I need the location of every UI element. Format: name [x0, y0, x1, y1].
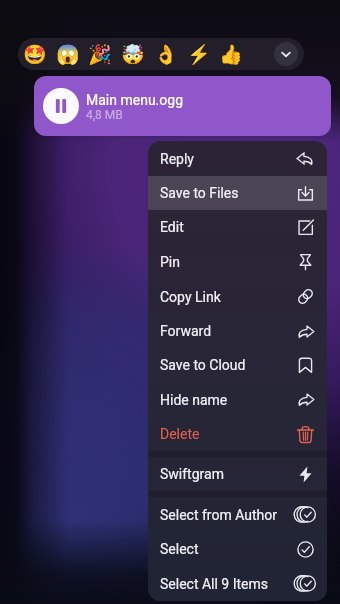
staticText: Pin	[160, 254, 180, 270]
staticText: Delete	[160, 426, 200, 442]
button[interactable]: Main menu.ogg	[34, 76, 331, 136]
button[interactable]: 🤩	[23, 43, 45, 65]
staticText: 4,8 MB	[86, 108, 123, 122]
staticText: Select from Author	[160, 507, 277, 523]
staticText: Save to Cloud	[160, 357, 246, 373]
staticText: Edit	[160, 219, 184, 235]
staticText: 🎉	[88, 43, 110, 65]
button[interactable]: 😱	[56, 43, 78, 65]
button[interactable]: Save to Files	[148, 176, 327, 210]
staticText: 🤯	[121, 43, 143, 65]
staticText: ⚡	[187, 43, 209, 65]
staticText: Select All 9 Items	[160, 576, 269, 592]
button[interactable]: Select from Author	[148, 497, 327, 532]
button[interactable]: 🤯	[121, 43, 143, 65]
button[interactable]: Save to Cloud	[148, 348, 327, 382]
staticText: Save to Files	[160, 185, 239, 201]
staticText: 👌	[154, 43, 176, 65]
staticText: Copy Link	[160, 289, 221, 305]
button[interactable]: 🎉	[88, 43, 110, 65]
button[interactable]: Reply	[148, 141, 327, 176]
staticText: Reply	[160, 151, 194, 167]
button[interactable]: Select	[148, 532, 327, 566]
button[interactable]: Edit	[148, 210, 327, 244]
staticText: 🤩	[23, 43, 45, 65]
button[interactable]: 👍	[219, 43, 241, 65]
button[interactable]: Swiftgram	[148, 457, 327, 491]
staticText: Swiftgram	[160, 466, 224, 482]
button[interactable]: Delete	[148, 417, 327, 451]
staticText: Forward	[160, 323, 212, 339]
staticText: 😱	[56, 43, 78, 65]
button[interactable]: ⚡	[187, 43, 209, 65]
staticText: Main menu.ogg	[86, 92, 183, 108]
button[interactable]: Select All 9 Items	[148, 566, 327, 601]
button[interactable]: Copy Link	[148, 279, 327, 314]
button[interactable]: Pin	[148, 244, 327, 279]
button[interactable]: Hide name	[148, 382, 327, 417]
staticText: Select	[160, 541, 199, 557]
button[interactable]: More reactions	[274, 42, 298, 66]
button[interactable]: Forward	[148, 314, 327, 348]
button[interactable]: 👌	[154, 43, 176, 65]
staticText: 👍	[219, 43, 241, 65]
staticText: Hide name	[160, 392, 228, 408]
